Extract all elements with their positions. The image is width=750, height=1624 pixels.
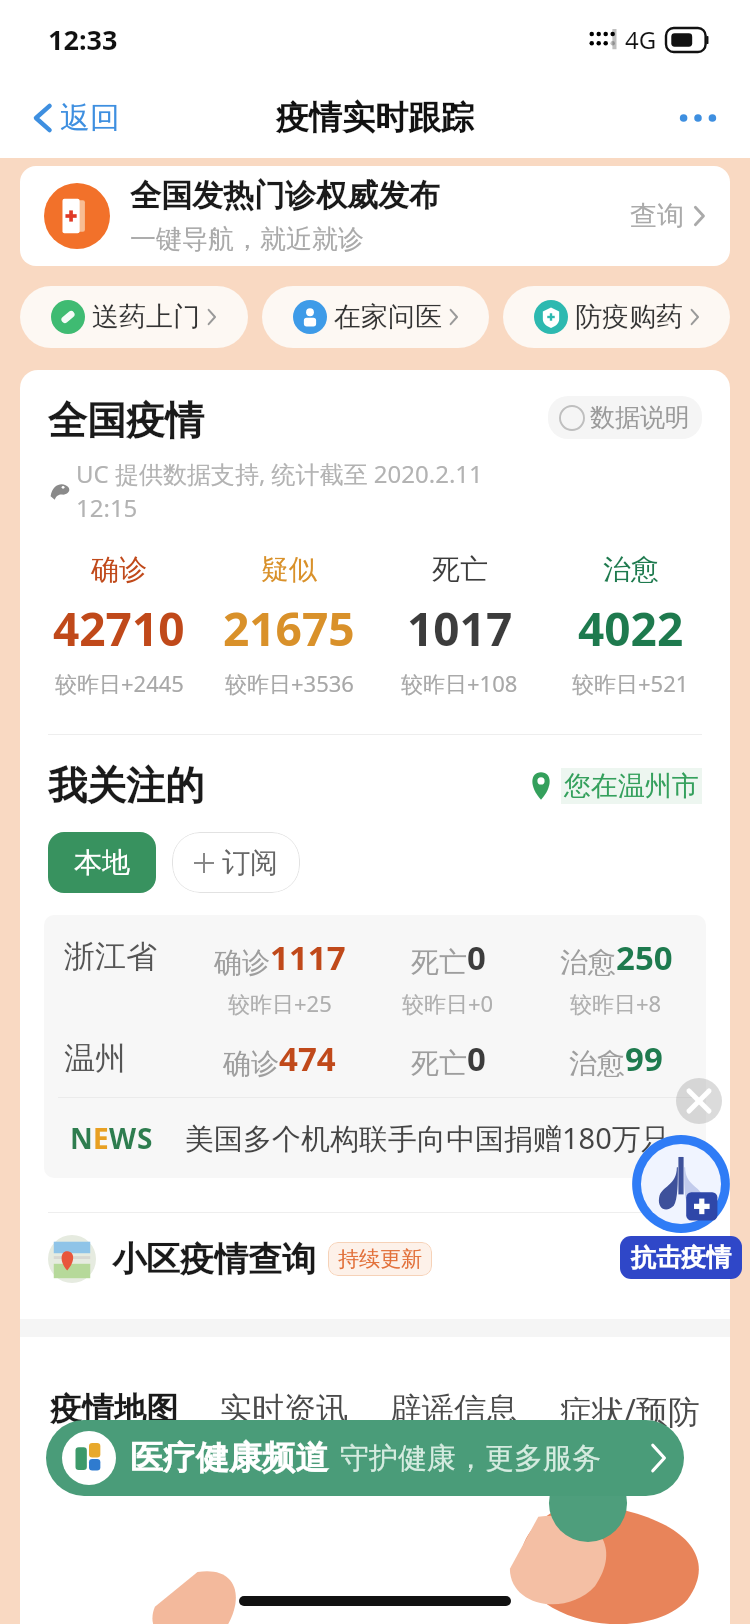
staticText: 您在温州市 <box>564 769 699 803</box>
button[interactable]: N <box>50 1098 700 1178</box>
staticText: 查询 <box>630 199 684 233</box>
staticText: W <box>109 1119 137 1157</box>
staticText: 较昨日+0 <box>402 988 494 1018</box>
staticText: 死亡 <box>432 552 488 587</box>
staticText: UC 提供数据支持, 统计截至 2020.2.11 12:15 <box>76 457 548 524</box>
staticText: 在家问医 <box>334 300 442 334</box>
staticText: 小区疫情查询 <box>112 1238 316 1281</box>
staticText: 疫情实时跟踪 <box>276 97 474 139</box>
staticText: 250 <box>616 935 673 980</box>
staticText: 死亡 <box>411 1046 467 1081</box>
staticText: 全国疫情 <box>48 396 204 445</box>
button[interactable]: 订阅 <box>172 832 300 893</box>
staticText: 确诊 <box>91 552 147 587</box>
staticText: 治愈 <box>560 945 616 980</box>
button[interactable]: Close <box>676 1078 722 1124</box>
staticText: 12:33 <box>48 21 118 58</box>
button[interactable]: 小区疫情查询 <box>20 1213 730 1305</box>
button[interactable]: 您在温州市 <box>529 768 702 804</box>
staticText: 较昨日+3536 <box>225 668 354 698</box>
staticText: E <box>93 1119 109 1157</box>
button[interactable]: 送药上门 <box>20 286 248 348</box>
staticText: 数据说明 <box>590 402 690 433</box>
staticText: 医疗健康频道 <box>130 1437 328 1479</box>
staticText: 辟谣信息 <box>390 1389 518 1429</box>
button[interactable]: 疫情地图 <box>44 1385 184 1433</box>
staticText: 守护健康，更多服务 <box>340 1440 601 1477</box>
button[interactable]: 症状/预防 <box>554 1385 706 1437</box>
staticText: 较昨日+8 <box>570 988 662 1018</box>
staticText: N <box>70 1119 93 1157</box>
button[interactable]: More options <box>668 101 728 135</box>
staticText: 治愈 <box>569 1046 625 1081</box>
button[interactable]: 数据说明 <box>548 396 702 439</box>
staticText: 42710 <box>53 597 185 660</box>
button[interactable]: 全国发热门诊权威发布 <box>20 166 730 266</box>
staticText: 4G <box>625 23 657 56</box>
staticText: 0 <box>467 1036 486 1081</box>
staticText: 我关注的 <box>48 761 204 810</box>
staticText: 0 <box>467 935 486 980</box>
staticText: 美国多个机构联手向中国捐赠180万只… <box>185 1118 693 1158</box>
staticText: 疫情地图 <box>50 1389 178 1429</box>
button[interactable]: 返回 <box>24 93 128 143</box>
button[interactable]: 辟谣信息 <box>384 1385 524 1433</box>
staticText: 较昨日+2445 <box>55 668 184 698</box>
staticText: 浙江省 <box>64 937 195 976</box>
staticText: 温州 <box>64 1039 195 1078</box>
staticText: 较昨日+521 <box>572 668 689 698</box>
staticText: S <box>137 1119 153 1157</box>
staticText: 较昨日+25 <box>228 988 332 1018</box>
staticText: 全国发热门诊权威发布 <box>130 176 440 215</box>
button[interactable]: 防疫购药 <box>503 286 730 348</box>
staticText: 1117 <box>270 935 346 980</box>
staticText: 死亡 <box>411 945 467 980</box>
button[interactable]: 实时资讯 <box>214 1385 354 1433</box>
button[interactable]: 抗击疫情 <box>629 1132 733 1236</box>
staticText: 474 <box>279 1036 336 1081</box>
staticText: 99 <box>625 1036 663 1081</box>
staticText: 订阅 <box>222 845 278 880</box>
staticText: 实时资讯 <box>220 1389 348 1429</box>
staticText: 治愈 <box>603 552 659 587</box>
staticText: 4022 <box>578 597 684 660</box>
staticText: 确诊 <box>223 1046 279 1081</box>
button[interactable]: 本地 <box>48 832 156 893</box>
staticText: 一键导航，就近就诊 <box>130 223 364 256</box>
staticText: 抗击疫情 <box>631 1242 731 1273</box>
staticText: 确诊 <box>214 945 270 980</box>
staticText: 1017 <box>407 597 513 660</box>
button[interactable]: 医疗健康频道 <box>46 1420 684 1496</box>
staticText: 本地 <box>74 845 130 880</box>
staticText: 返回 <box>60 99 120 137</box>
staticText: 症状/预防 <box>560 1389 700 1433</box>
staticText: 21675 <box>223 597 355 660</box>
staticText: 送药上门 <box>92 300 200 334</box>
staticText: 持续更新 <box>338 1246 422 1272</box>
staticText: 较昨日+108 <box>401 668 518 698</box>
staticText: 疑似 <box>261 552 317 587</box>
staticText: 防疫购药 <box>575 300 683 334</box>
button[interactable]: 在家问医 <box>262 286 489 348</box>
